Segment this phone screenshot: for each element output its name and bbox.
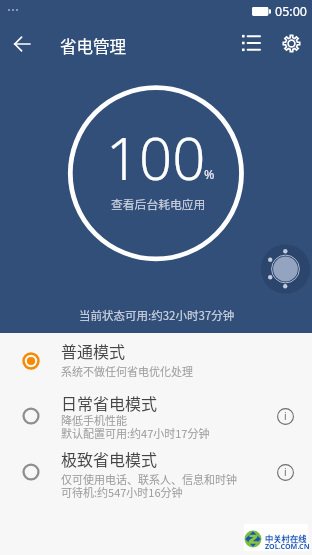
staticText: i xyxy=(284,465,287,479)
staticText: 当前状态可用:约32小时37分钟 xyxy=(79,307,235,324)
button[interactable]: Info xyxy=(270,457,300,487)
staticText: 极致省电模式 xyxy=(61,447,158,470)
staticText: 系统不做任何省电优化处理 xyxy=(61,363,193,379)
staticText: 仅可使用电话、联系人、信息和时钟 xyxy=(61,471,237,487)
button[interactable] xyxy=(0,444,312,500)
staticText: 查看后台耗电应用 xyxy=(111,195,206,212)
staticText: ZOL.COM.CN xyxy=(265,541,310,551)
staticText: 05:00 xyxy=(275,3,307,20)
staticText: 普通模式 xyxy=(61,339,126,362)
button[interactable]: App list xyxy=(231,23,271,63)
button[interactable] xyxy=(0,335,312,387)
staticText: 100 xyxy=(106,118,206,197)
staticText: 默认配置可用:约47小时17分钟 xyxy=(61,425,210,441)
button[interactable]: Settings xyxy=(271,23,311,63)
staticText: 可待机:约547小时16分钟 xyxy=(61,484,183,500)
staticText: 省电管理 xyxy=(60,34,126,58)
button[interactable] xyxy=(0,388,312,444)
button[interactable]: Power plan xyxy=(259,244,309,294)
button[interactable]: Info xyxy=(270,401,300,431)
staticText: i xyxy=(284,409,287,423)
button[interactable]: Back xyxy=(2,24,42,64)
staticText: 日常省电模式 xyxy=(61,391,158,414)
staticText: % xyxy=(204,166,215,183)
staticText: 中关村在线 xyxy=(265,532,307,544)
staticText: 降低手机性能 xyxy=(61,412,127,428)
